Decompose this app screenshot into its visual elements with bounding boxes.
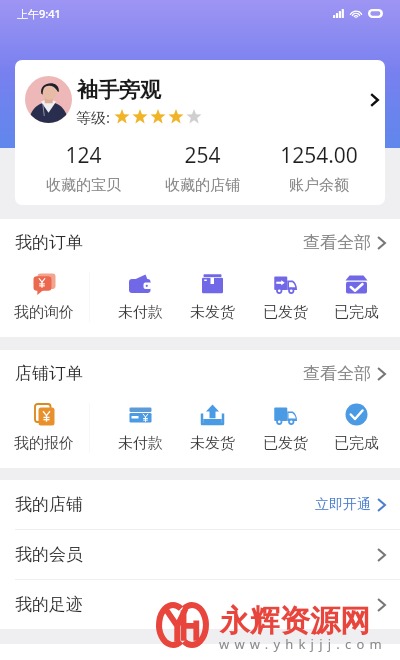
staticText: 已完成: [334, 303, 379, 322]
button[interactable]: 袖手旁观: [15, 60, 385, 205]
button[interactable]: 254: [147, 134, 257, 201]
staticText: 立即开通: [315, 496, 371, 514]
staticText: 袖手旁观: [77, 77, 161, 103]
button[interactable]: 我的订单: [0, 219, 400, 266]
staticText: 已发货: [263, 434, 308, 453]
button[interactable]: 未付款: [107, 397, 173, 468]
staticText: 我的足迹: [15, 594, 83, 615]
staticText: 未发货: [190, 434, 235, 453]
staticText: 查看全部: [303, 232, 371, 253]
staticText: 永辉资源网: [220, 602, 370, 640]
staticText: 查看全部: [303, 363, 371, 384]
staticText: 等级:: [76, 107, 111, 127]
staticText: 未发货: [190, 303, 235, 322]
staticText: 店铺订单: [15, 363, 83, 384]
button[interactable]: 店铺订单: [0, 350, 400, 397]
staticText: 1254.00: [280, 141, 358, 170]
button[interactable]: 124: [28, 134, 138, 201]
staticText: 我的会员: [15, 544, 83, 565]
staticText: 账户余额: [289, 176, 349, 195]
button[interactable]: 已完成: [323, 266, 389, 337]
button[interactable]: 未付款: [107, 266, 173, 337]
button[interactable]: 我的会员: [0, 530, 400, 579]
button[interactable]: 已发货: [252, 397, 318, 468]
staticText: 我的询价: [14, 303, 74, 322]
staticText: www.yhkjjj.com: [219, 635, 387, 653]
staticText: 上午9:41: [17, 6, 61, 21]
button[interactable]: 我的报价: [11, 397, 77, 468]
staticText: 未付款: [118, 303, 163, 322]
staticText: 我的报价: [14, 434, 74, 453]
button[interactable]: 已发货: [252, 266, 318, 337]
button[interactable]: 1254.00: [264, 134, 374, 201]
button[interactable]: 已完成: [323, 397, 389, 468]
button[interactable]: 我的询价: [11, 266, 77, 337]
staticText: 已发货: [263, 303, 308, 322]
button[interactable]: 个人资料: [359, 85, 385, 115]
staticText: 收藏的宝贝: [46, 176, 121, 195]
staticText: 我的店铺: [15, 494, 83, 515]
staticText: 收藏的店铺: [165, 176, 240, 195]
button[interactable]: 未发货: [179, 397, 245, 468]
staticText: 已完成: [334, 434, 379, 453]
staticText: 未付款: [118, 434, 163, 453]
button[interactable]: 我的店铺: [0, 480, 400, 529]
staticText: 124: [65, 141, 102, 170]
button[interactable]: 未发货: [179, 266, 245, 337]
staticText: 254: [184, 141, 221, 170]
staticText: 我的订单: [15, 232, 83, 253]
button[interactable]: 我的足迹: [0, 580, 400, 629]
